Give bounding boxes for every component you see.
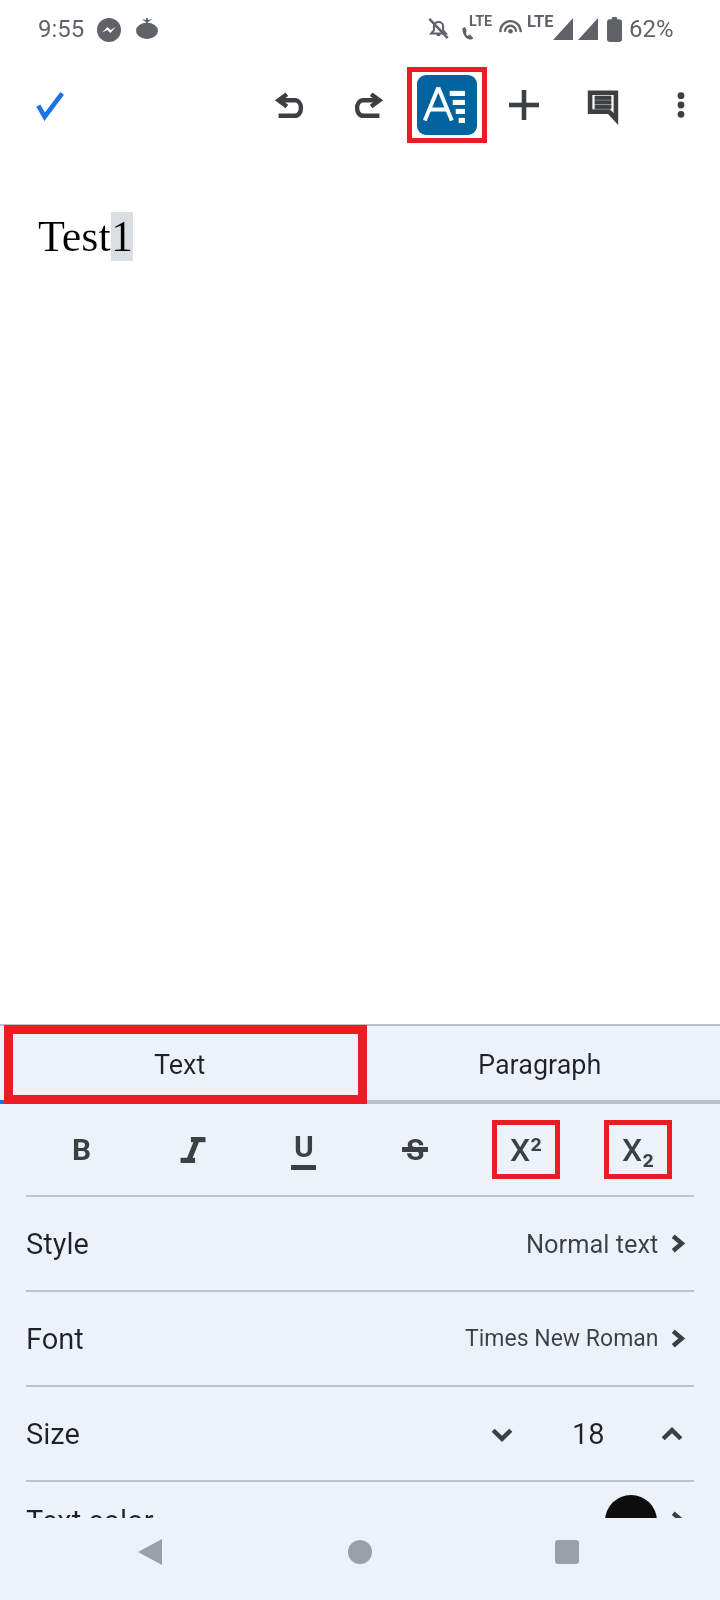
staticText: Size [26, 1417, 80, 1451]
button[interactable]: X² [470, 1104, 581, 1195]
button[interactable]: Font [0, 1292, 720, 1385]
staticText: 9:55 [38, 15, 85, 43]
button[interactable]: Text [0, 1026, 360, 1104]
button[interactable]: B [26, 1104, 137, 1195]
button[interactable]: Text formatting [399, 57, 495, 153]
staticText: Text [154, 1049, 206, 1081]
staticText: LTE [527, 12, 554, 31]
button[interactable]: Recent apps [519, 1511, 615, 1593]
button[interactable]: Paragraph [360, 1026, 720, 1104]
button[interactable]: Done [2, 57, 98, 153]
button[interactable]: Insert [476, 57, 572, 153]
button[interactable]: S [359, 1104, 470, 1195]
staticText: S [406, 1132, 425, 1167]
button[interactable]: Style [0, 1197, 720, 1290]
staticText: LTE [469, 13, 493, 30]
staticText: 1 [111, 212, 133, 261]
button[interactable] [137, 1104, 248, 1195]
button[interactable]: Undo [242, 57, 338, 153]
staticText: Test [38, 212, 111, 261]
button[interactable]: Increase font size [632, 1394, 712, 1474]
staticText: 18 [572, 1417, 605, 1451]
button[interactable]: U [248, 1104, 359, 1195]
staticText: Text color [26, 1504, 154, 1538]
staticText: Paragraph [478, 1049, 602, 1081]
button[interactable]: Comments [555, 57, 651, 153]
staticText: X₂ [622, 1131, 655, 1169]
staticText: Times New Roman [465, 1325, 659, 1352]
staticText: X² [510, 1131, 543, 1169]
button[interactable]: Decrease font size [462, 1394, 542, 1474]
button[interactable]: Home [312, 1511, 408, 1593]
staticText: Style [26, 1227, 89, 1261]
staticText: B [72, 1132, 92, 1167]
staticText: U [294, 1129, 314, 1164]
button[interactable]: Back [102, 1511, 198, 1593]
button[interactable]: Text color [0, 1482, 720, 1575]
staticText: Font [26, 1322, 84, 1356]
button[interactable]: More options [633, 57, 720, 153]
staticText: 62% [629, 15, 674, 43]
button[interactable]: Redo [320, 57, 416, 153]
staticText: Normal text [526, 1229, 659, 1259]
button[interactable]: X₂ [582, 1104, 693, 1195]
